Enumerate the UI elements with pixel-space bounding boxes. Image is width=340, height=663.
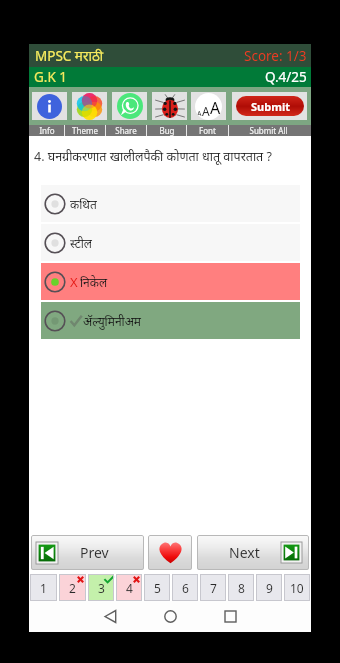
staticText: 7	[210, 580, 217, 596]
button[interactable]: 2	[59, 574, 86, 601]
button[interactable]: Prev	[31, 535, 144, 570]
button[interactable]: 1	[30, 574, 57, 601]
staticText: 3	[98, 580, 105, 596]
staticText: A	[210, 97, 221, 119]
button[interactable]: स्टील	[41, 224, 300, 261]
staticText: ॲल्युमिनीअम	[83, 313, 142, 329]
staticText: 1	[40, 580, 47, 596]
button[interactable]: 4	[116, 574, 142, 601]
button[interactable]: Bug	[147, 125, 186, 136]
button[interactable]: 9	[256, 574, 282, 601]
button[interactable]: Bug	[152, 92, 187, 120]
staticText: स्टील	[70, 235, 92, 251]
button[interactable]: 7	[200, 574, 226, 601]
button[interactable]: Info	[32, 92, 67, 120]
staticText: MPSC मराठी	[35, 47, 104, 65]
staticText: 6	[182, 580, 189, 596]
staticText: X	[70, 273, 78, 291]
button[interactable]: Font	[191, 92, 226, 120]
staticText: Submit All	[249, 125, 288, 136]
staticText: Bug	[159, 125, 175, 136]
button[interactable]: 10	[284, 574, 310, 601]
staticText: G.K 1	[34, 68, 68, 86]
staticText: 4	[126, 580, 133, 596]
button[interactable]: Next	[197, 535, 309, 570]
staticText: 4. घनग्रीकरणात खालीलपैकी कोणता धातू वापर…	[34, 148, 311, 165]
staticText: Score: 1/3	[244, 47, 307, 65]
button[interactable]: ॲल्युमिनीअम	[41, 302, 300, 339]
other: Favourite	[148, 535, 192, 570]
staticText: Theme	[72, 125, 98, 136]
button[interactable]: Submit	[232, 92, 307, 120]
staticText: Font	[199, 125, 216, 136]
button[interactable]: Share	[106, 125, 146, 136]
button[interactable]: 6	[172, 574, 198, 601]
button[interactable]: 3	[88, 574, 114, 601]
button[interactable]: X	[41, 263, 300, 300]
button[interactable]: Recents	[213, 601, 247, 632]
staticText: 9	[266, 580, 273, 596]
button[interactable]: Info	[29, 125, 64, 136]
staticText: A	[202, 103, 210, 119]
button[interactable]: Back	[93, 601, 127, 632]
button[interactable]: Submit All	[229, 125, 308, 136]
button[interactable]: Share	[112, 92, 147, 120]
staticText: कथित	[70, 196, 97, 212]
staticText: 5	[154, 580, 161, 596]
staticText: Submit	[251, 99, 290, 114]
button[interactable]: Theme	[72, 92, 107, 120]
button[interactable]: Font	[187, 125, 228, 136]
staticText: Next	[229, 543, 260, 562]
staticText: A	[197, 109, 202, 119]
button[interactable]: Home	[153, 601, 187, 632]
button[interactable]: Theme	[65, 125, 105, 136]
staticText: 8	[238, 580, 245, 596]
button[interactable]: कथित	[41, 185, 300, 222]
staticText: 10	[290, 580, 304, 596]
staticText: Info	[39, 125, 55, 136]
staticText: Prev	[80, 543, 109, 562]
button[interactable]	[148, 535, 192, 570]
staticText: Share	[115, 125, 137, 136]
button[interactable]: 5	[144, 574, 170, 601]
staticText: Q.4/25	[265, 68, 307, 86]
staticText: 2	[69, 580, 76, 596]
staticText: निकेल	[80, 274, 108, 290]
button[interactable]: 8	[228, 574, 254, 601]
